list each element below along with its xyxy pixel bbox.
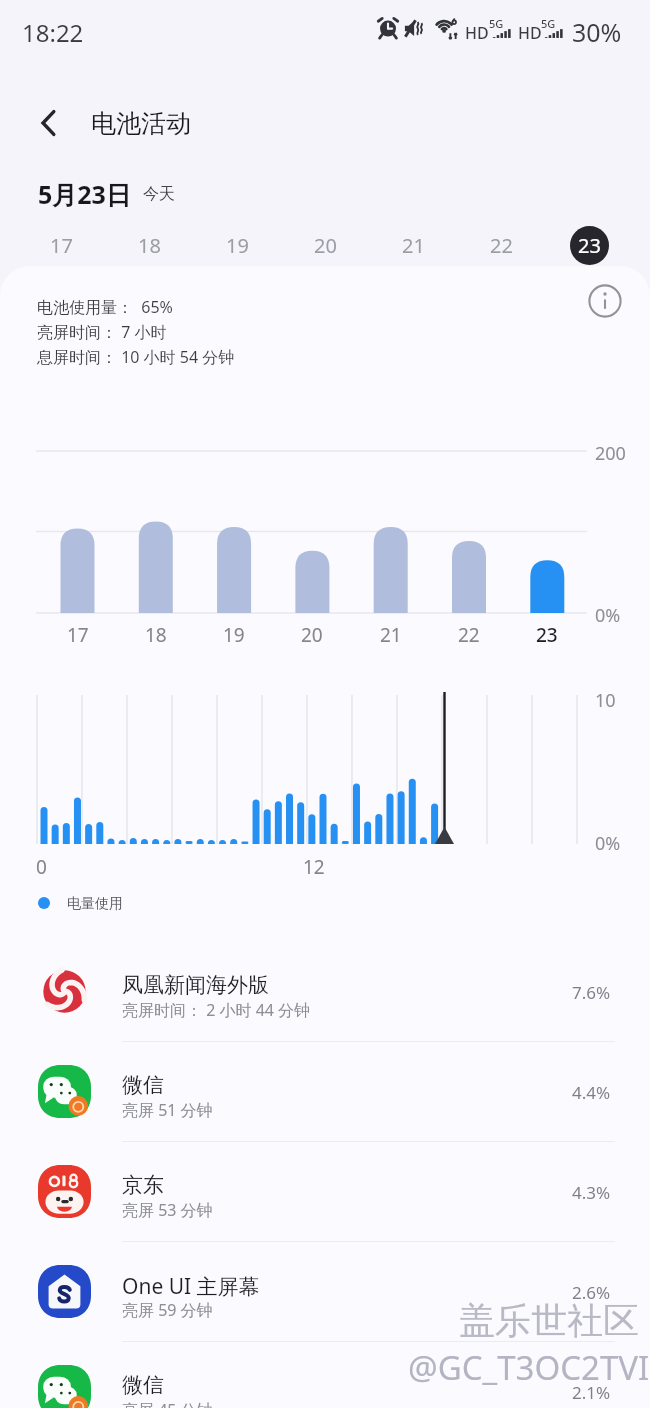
button[interactable]: Back (26, 100, 72, 146)
button[interactable]: Information (586, 282, 624, 320)
button[interactable]: 23 (563, 219, 615, 271)
staticText: 18 (138, 232, 161, 259)
staticText: 30% (572, 15, 622, 49)
staticText: 0% (595, 831, 621, 856)
button[interactable]: 19 (211, 219, 263, 271)
staticText: 凤凰新闻海外版 (122, 972, 269, 998)
staticText: 4.3% (572, 1181, 611, 1204)
staticText: 盖乐世社区 (459, 1298, 639, 1343)
staticText: 京东 (122, 1172, 164, 1198)
staticText: 息屏时间： 10 小时 54 分钟 (37, 346, 235, 368)
staticText: 电池使用量： 65% (37, 296, 173, 318)
staticText: HD (518, 22, 542, 44)
staticText: 2.1% (572, 1381, 611, 1404)
staticText: 18:22 (22, 16, 84, 49)
staticText: 微信 (122, 1072, 164, 1098)
staticText: 亮屏时间： 2 小时 44 分钟 (122, 999, 311, 1021)
staticText: 5月23日 (38, 177, 131, 211)
staticText: 23 (578, 232, 601, 259)
staticText: 23 (536, 622, 558, 648)
button[interactable]: 20 (299, 219, 351, 271)
staticText: 电量使用 (67, 895, 123, 913)
staticText: 0 (36, 854, 47, 880)
staticText: 19 (226, 232, 249, 259)
button[interactable]: 21 (387, 219, 439, 271)
button[interactable]: 微信 (0, 1343, 650, 1408)
staticText: 今天 (143, 184, 175, 204)
button[interactable]: 18 (123, 219, 175, 271)
staticText: One UI 主屏幕 (122, 1272, 260, 1301)
button[interactable]: 17 (35, 219, 87, 271)
staticText: 亮屏时间： 7 小时 (37, 321, 167, 343)
staticText: 5G (489, 16, 504, 31)
staticText: 微信 (122, 1372, 164, 1398)
staticText: 7.6% (572, 981, 611, 1004)
staticText: 20 (301, 622, 323, 648)
button[interactable]: 凤凰新闻海外版 (0, 943, 650, 1043)
staticText: 4.4% (572, 1081, 611, 1104)
staticText: 17 (67, 622, 89, 648)
staticText: 5G (541, 16, 556, 31)
staticText: 10 (595, 688, 616, 713)
staticText: 200 (595, 441, 626, 466)
button[interactable]: 京东 (0, 1143, 650, 1243)
staticText: 18 (145, 622, 167, 648)
staticText: 亮屏 59 分钟 (122, 1299, 213, 1321)
staticText: 22 (458, 622, 480, 648)
staticText: 21 (380, 622, 402, 648)
staticText: 2.6% (572, 1281, 611, 1304)
staticText: 亮屏 51 分钟 (122, 1099, 213, 1121)
staticText: 17 (50, 232, 73, 259)
button[interactable]: 微信 (0, 1043, 650, 1143)
staticText: 0% (595, 603, 621, 628)
staticText: HD (465, 22, 489, 44)
staticText: 电池活动 (91, 108, 191, 139)
staticText: 20 (314, 232, 337, 259)
staticText: @GC_T3OC2TVI (408, 1345, 650, 1390)
button[interactable]: One UI 主屏幕 (0, 1243, 650, 1343)
button[interactable]: 22 (475, 219, 527, 271)
staticText: 亮屏 45 分钟 (122, 1399, 213, 1408)
staticText: 19 (223, 622, 245, 648)
staticText: 亮屏 53 分钟 (122, 1199, 213, 1221)
staticText: 22 (490, 232, 513, 259)
staticText: 12 (303, 854, 325, 880)
staticText: 21 (402, 232, 425, 259)
